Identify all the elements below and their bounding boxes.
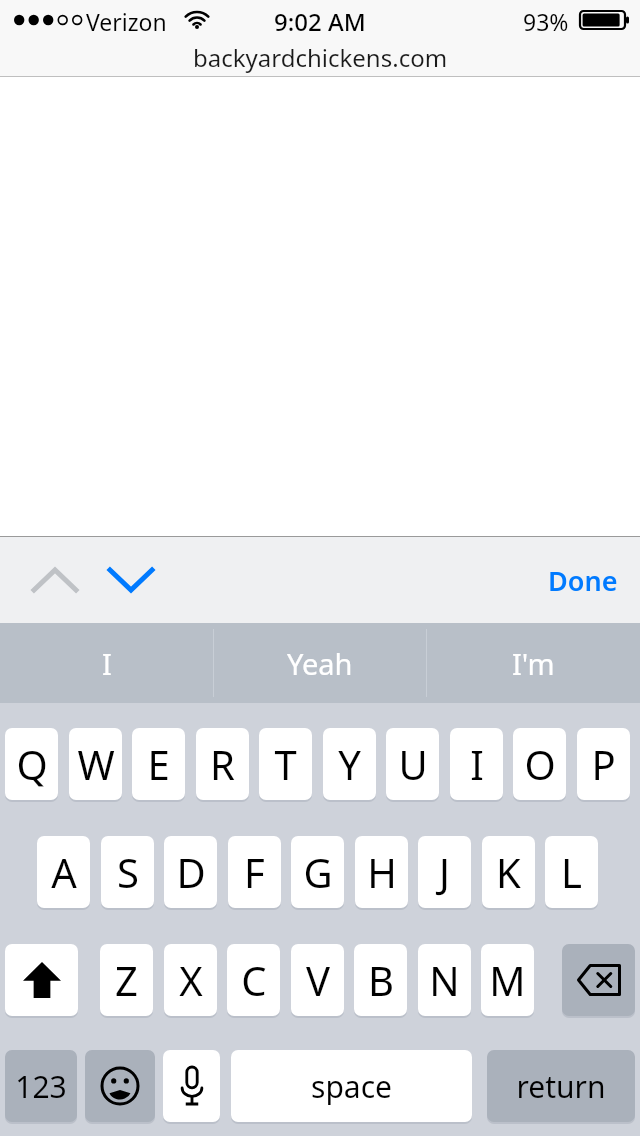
staticText: K — [496, 845, 521, 899]
staticText: 9:02 AM — [274, 5, 366, 38]
button[interactable]: H — [355, 836, 408, 908]
button[interactable]: Next field — [92, 551, 170, 609]
button[interactable]: N — [418, 944, 471, 1016]
staticText: I — [470, 737, 484, 791]
staticText: Yeah — [287, 644, 353, 683]
button[interactable]: F — [228, 836, 281, 908]
button[interactable]: Dictation — [163, 1050, 220, 1122]
button[interactable]: Yeah — [213, 623, 426, 703]
staticText: return — [516, 1066, 606, 1107]
button[interactable]: P — [577, 728, 630, 800]
button[interactable]: C — [227, 944, 280, 1016]
button[interactable]: B — [354, 944, 407, 1016]
button[interactable]: S — [101, 836, 154, 908]
button[interactable]: I — [450, 728, 503, 800]
staticText: H — [367, 845, 397, 899]
button[interactable]: Emoji — [85, 1050, 155, 1122]
button[interactable]: Q — [5, 728, 58, 800]
staticText: F — [244, 845, 265, 899]
button[interactable]: Numbers — [5, 1050, 77, 1122]
staticText: M — [489, 953, 526, 1007]
staticText: J — [439, 845, 450, 899]
button[interactable]: Y — [323, 728, 376, 800]
staticText: 123 — [15, 1066, 67, 1107]
button[interactable]: I — [0, 623, 213, 703]
button[interactable]: return — [487, 1050, 635, 1122]
staticText: Y — [338, 737, 361, 791]
staticText: R — [210, 737, 235, 791]
button[interactable]: Done — [548, 562, 618, 599]
staticText: I'm — [512, 644, 555, 683]
button[interactable]: space — [231, 1050, 472, 1122]
button[interactable]: Backspace — [562, 944, 635, 1016]
staticText: C — [241, 953, 267, 1007]
staticText: O — [524, 737, 556, 791]
staticText: N — [429, 953, 460, 1007]
staticText: P — [591, 737, 616, 791]
button[interactable]: J — [418, 836, 471, 908]
button[interactable]: D — [164, 836, 217, 908]
button[interactable]: G — [291, 836, 344, 908]
staticText: B — [368, 953, 394, 1007]
button[interactable]: U — [386, 728, 439, 800]
staticText: W — [77, 737, 115, 791]
button[interactable]: Shift — [5, 944, 78, 1016]
staticText: 93% — [523, 6, 569, 37]
staticText: D — [176, 845, 206, 899]
staticText: L — [561, 845, 582, 899]
staticText: Done — [548, 562, 618, 599]
staticText: space — [311, 1066, 392, 1107]
button[interactable]: I'm — [427, 623, 640, 703]
button[interactable]: T — [259, 728, 312, 800]
staticText: G — [303, 845, 333, 899]
button[interactable]: backyardchickens.com — [0, 38, 640, 76]
staticText: T — [274, 737, 297, 791]
staticText: A — [51, 845, 77, 899]
button[interactable]: L — [545, 836, 598, 908]
button[interactable]: Z — [100, 944, 153, 1016]
button[interactable]: M — [481, 944, 534, 1016]
staticText: S — [117, 845, 139, 899]
button[interactable]: Previous field — [16, 551, 94, 609]
button[interactable]: E — [132, 728, 185, 800]
staticText: Q — [16, 737, 48, 791]
staticText: U — [398, 737, 428, 791]
button[interactable]: O — [513, 728, 566, 800]
staticText: Verizon — [86, 6, 167, 37]
staticText: E — [147, 737, 170, 791]
button[interactable]: V — [291, 944, 344, 1016]
button[interactable]: X — [164, 944, 217, 1016]
button[interactable]: W — [69, 728, 122, 800]
staticText: X — [179, 953, 203, 1007]
staticText: Z — [115, 953, 138, 1007]
button[interactable]: K — [482, 836, 535, 908]
button[interactable]: A — [37, 836, 90, 908]
staticText: backyardchickens.com — [193, 41, 448, 74]
button[interactable]: R — [196, 728, 249, 800]
staticText: I — [102, 644, 112, 683]
staticText: V — [306, 953, 330, 1007]
